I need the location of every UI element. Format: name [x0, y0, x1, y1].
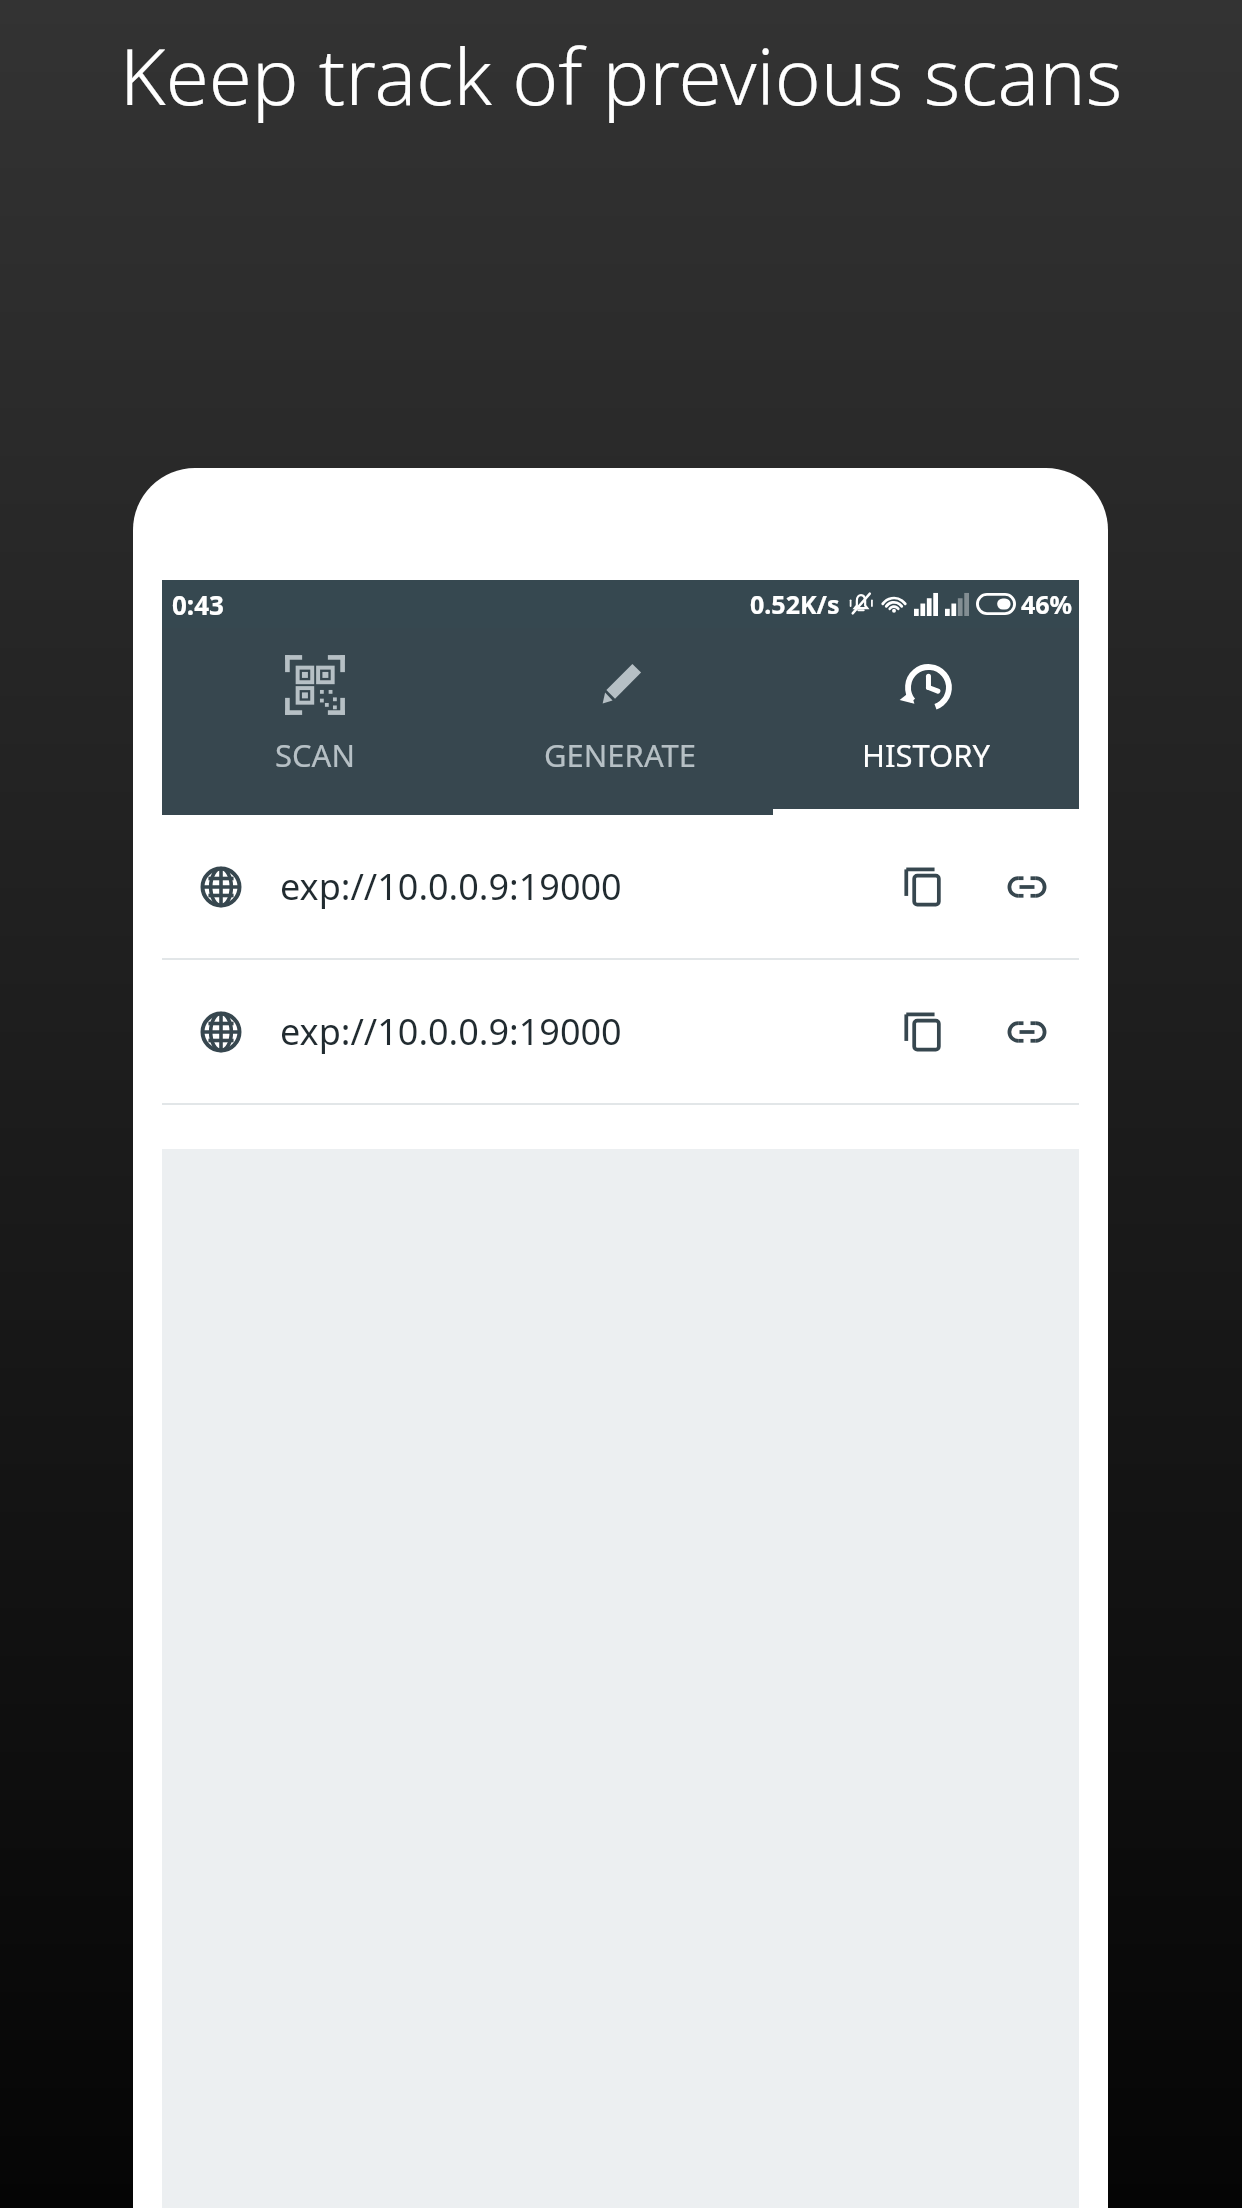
staticText: SCAN	[275, 734, 355, 776]
staticText: exp://10.0.0.9:19000	[280, 1007, 871, 1056]
button[interactable]: Open link	[975, 960, 1079, 1103]
button[interactable]: SCAN	[162, 628, 467, 776]
staticText: 46%	[1021, 587, 1073, 621]
button[interactable]: Copy	[871, 815, 975, 958]
staticText: HISTORY	[862, 734, 991, 776]
button[interactable]: Open link	[975, 815, 1079, 958]
staticText: Keep track of previous scans	[30, 22, 1212, 128]
staticText: GENERATE	[544, 734, 696, 776]
staticText: 0.52K/s	[750, 587, 840, 621]
button[interactable]: HISTORY	[773, 628, 1079, 776]
button[interactable]: exp://10.0.0.9:19000	[162, 960, 1079, 1103]
staticText: exp://10.0.0.9:19000	[280, 862, 871, 911]
staticText: 0:43	[172, 587, 224, 622]
button[interactable]: GENERATE	[467, 628, 773, 776]
button[interactable]: Copy	[871, 960, 975, 1103]
button[interactable]: exp://10.0.0.9:19000	[162, 815, 1079, 958]
